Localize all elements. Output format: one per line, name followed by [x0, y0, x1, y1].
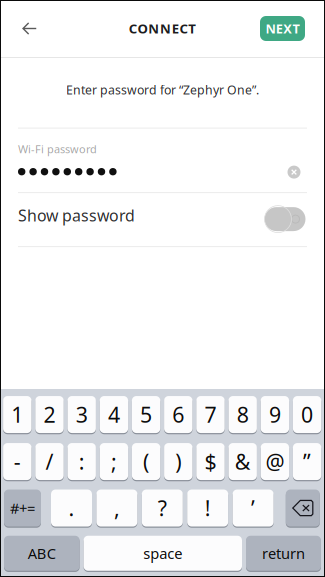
button[interactable]: Clear text	[287, 166, 300, 179]
button[interactable]: 2	[35, 396, 64, 434]
button[interactable]: NEXT	[260, 16, 305, 41]
staticText: 2	[43, 400, 55, 429]
staticText: )	[175, 447, 181, 476]
staticText: :	[79, 447, 85, 476]
button[interactable]: ?	[142, 490, 183, 528]
staticText: Show password	[18, 205, 135, 226]
staticText: -	[14, 447, 21, 476]
button[interactable]: return	[246, 536, 321, 572]
button[interactable]: &	[228, 443, 257, 481]
staticText: ’	[251, 494, 255, 522]
button[interactable]: ;	[100, 443, 128, 481]
button[interactable]: 1	[3, 396, 31, 434]
button[interactable]: !	[187, 490, 228, 528]
staticText: 1	[11, 400, 23, 429]
staticText: 4	[108, 400, 120, 429]
staticText: space	[143, 543, 182, 563]
staticText: ;	[111, 447, 117, 476]
button[interactable]: (	[132, 443, 160, 481]
staticText: ”	[303, 447, 311, 476]
staticText: 7	[204, 400, 216, 429]
button[interactable]: 0	[293, 396, 321, 434]
button[interactable]: #+=	[4, 490, 41, 528]
button[interactable]: Back	[9, 8, 49, 48]
staticText: ABC	[28, 543, 56, 563]
staticText: 0	[301, 400, 313, 429]
staticText: ,	[114, 494, 120, 522]
staticText: (	[143, 447, 149, 476]
button[interactable]: :	[67, 443, 96, 481]
button[interactable]: ”	[293, 443, 321, 481]
button[interactable]: 9	[261, 396, 289, 434]
staticText: 5	[140, 400, 152, 429]
button[interactable]: 3	[67, 396, 96, 434]
button[interactable]: 5	[132, 396, 160, 434]
staticText: ?	[158, 494, 167, 522]
button[interactable]: 6	[164, 396, 192, 434]
staticText: 6	[172, 400, 184, 429]
staticText: return	[262, 543, 305, 563]
staticText: !	[205, 494, 211, 522]
button[interactable]: ABC	[4, 536, 80, 572]
button[interactable]: .	[51, 490, 92, 528]
staticText: NEXT	[265, 20, 300, 37]
button[interactable]: @	[261, 443, 289, 481]
button[interactable]: Show password	[0, 193, 325, 246]
staticText: 3	[76, 400, 88, 429]
button[interactable]: -	[3, 443, 31, 481]
button[interactable]: 8	[228, 396, 257, 434]
button[interactable]: $	[196, 443, 225, 481]
staticText: /	[45, 447, 53, 476]
button[interactable]: )	[164, 443, 192, 481]
button[interactable]: ,	[96, 490, 137, 528]
button[interactable]: ’	[233, 490, 274, 528]
staticText: 8	[237, 400, 249, 429]
button[interactable]: /	[35, 443, 64, 481]
staticText: &	[235, 447, 251, 476]
staticText: #+=	[10, 498, 35, 518]
button[interactable]: 7	[196, 396, 225, 434]
staticText: Enter password for “Zephyr One”.	[66, 81, 259, 98]
staticText: Wi-Fi password	[18, 142, 97, 156]
button[interactable]: Delete	[286, 490, 320, 528]
staticText: 9	[269, 400, 281, 429]
staticText: @	[265, 447, 284, 476]
button[interactable]: 4	[100, 396, 128, 434]
staticText: CONNECT	[129, 19, 196, 37]
staticText: .	[68, 494, 74, 522]
button[interactable]: space	[84, 536, 242, 572]
staticText: $	[204, 447, 216, 476]
